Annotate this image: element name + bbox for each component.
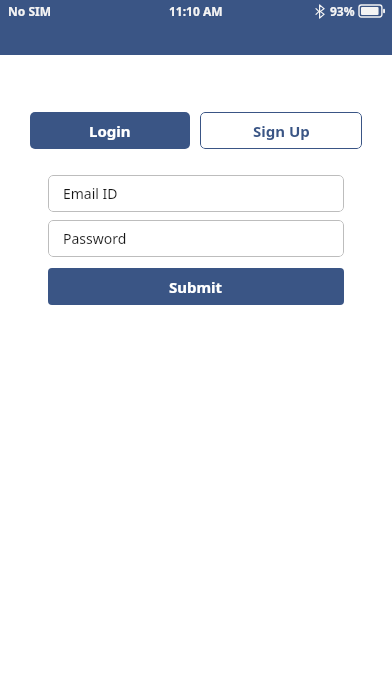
button[interactable]: Login [30, 112, 190, 149]
button[interactable]: Email ID [48, 175, 344, 212]
button[interactable]: Password [48, 220, 344, 257]
staticText: No SIM [8, 3, 51, 19]
staticText: Email ID [63, 184, 118, 203]
staticText: Sign Up [253, 121, 310, 141]
staticText: 11:10 AM [169, 3, 223, 19]
staticText: Submit [169, 277, 223, 297]
button[interactable]: Submit [48, 268, 344, 305]
button[interactable]: Sign Up [200, 112, 362, 149]
staticText: Password [63, 229, 127, 248]
staticText: Login [89, 121, 131, 141]
staticText: 93% [330, 3, 355, 19]
